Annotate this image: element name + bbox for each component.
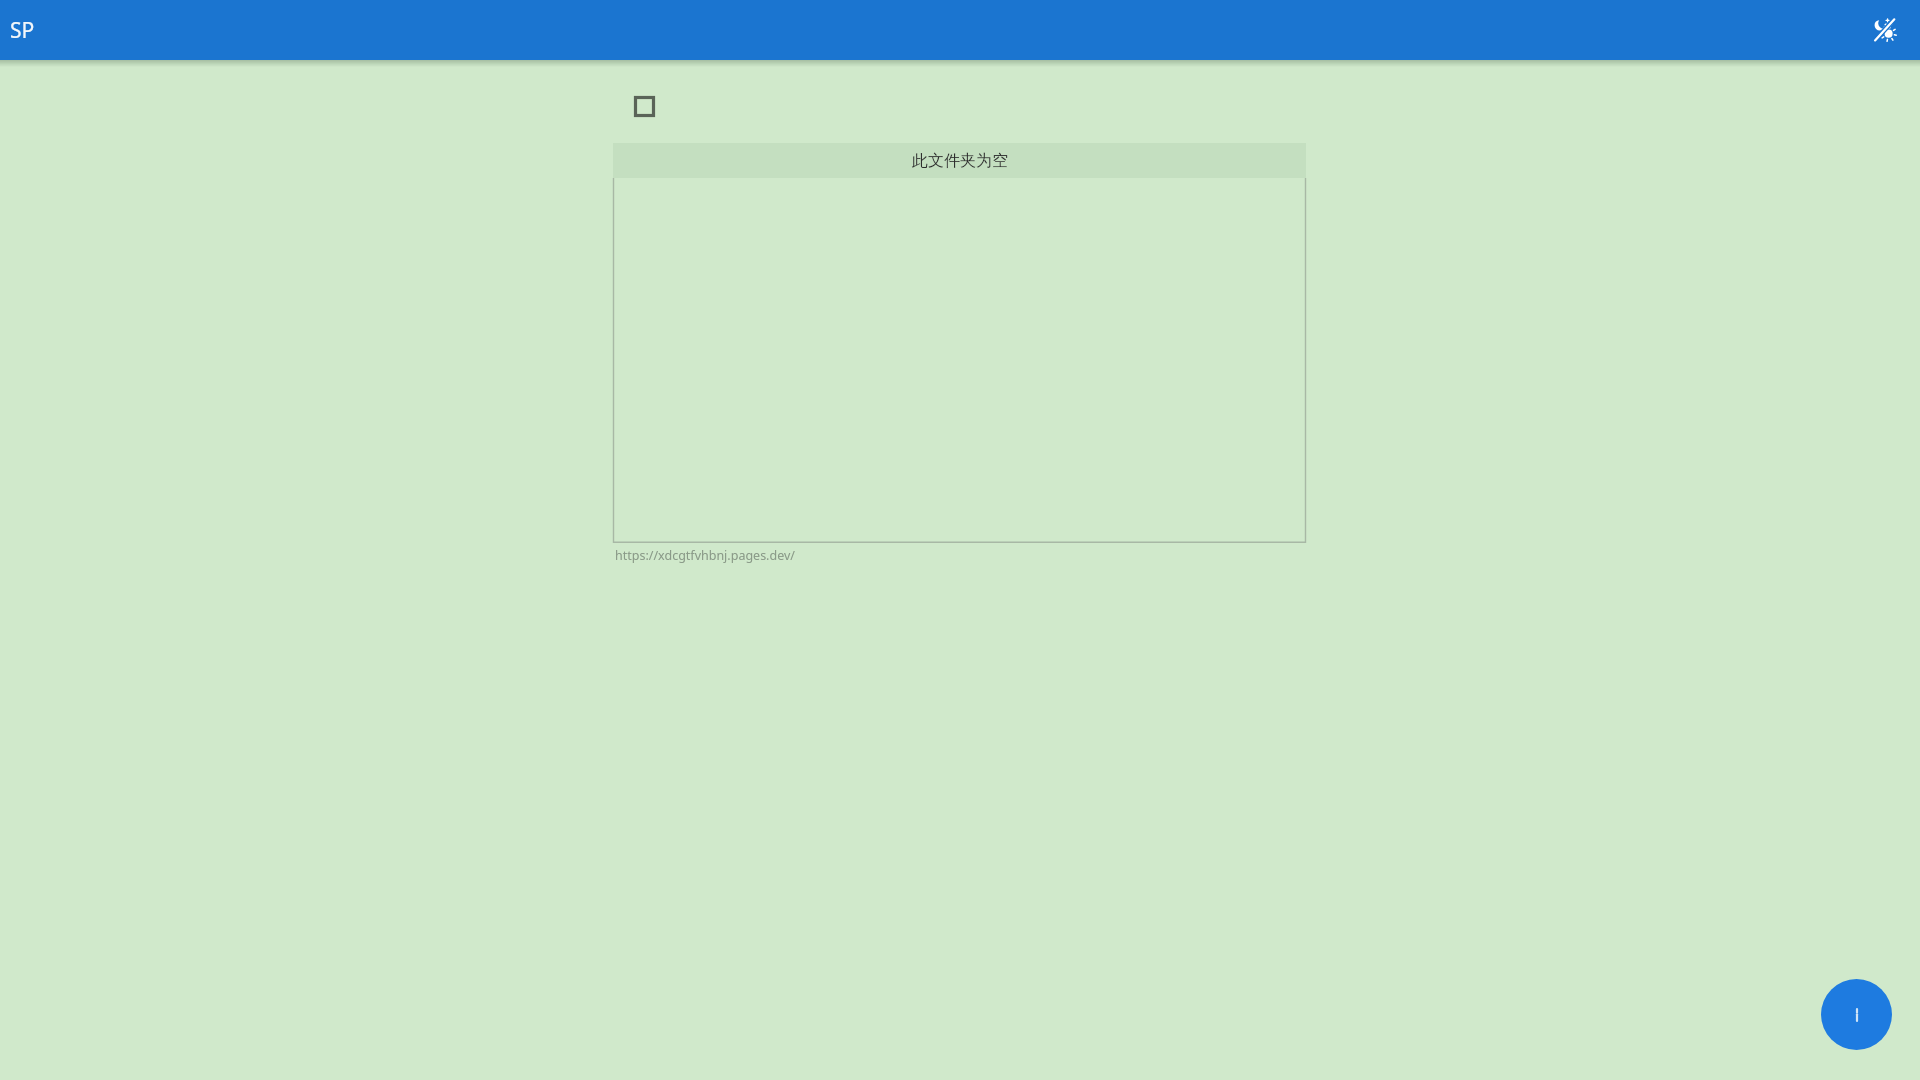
button[interactable]: Upload xyxy=(1821,979,1892,1050)
button[interactable]: Toggle theme xyxy=(1866,10,1906,50)
button[interactable]: Select all xyxy=(634,96,655,117)
button[interactable]: 此文件夹为空 xyxy=(613,143,1306,178)
staticText: https://xdcgtfvhbnj.pages.dev/ xyxy=(615,547,795,564)
staticText: SP xyxy=(10,16,35,45)
staticText: 此文件夹为空 xyxy=(912,151,1008,171)
